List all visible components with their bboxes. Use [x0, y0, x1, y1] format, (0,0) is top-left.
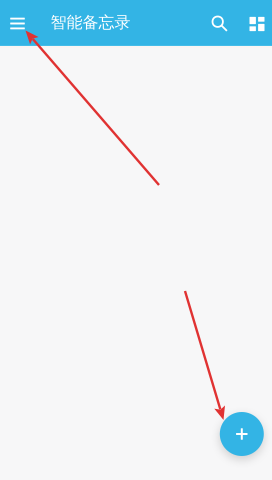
- staticText: 智能备忘录: [50, 13, 130, 32]
- button[interactable]: Open navigation drawer: [1, 1, 33, 46]
- button[interactable]: Switch layout: [242, 1, 272, 46]
- button[interactable]: Search: [205, 1, 235, 46]
- button[interactable]: New note: [220, 412, 264, 456]
